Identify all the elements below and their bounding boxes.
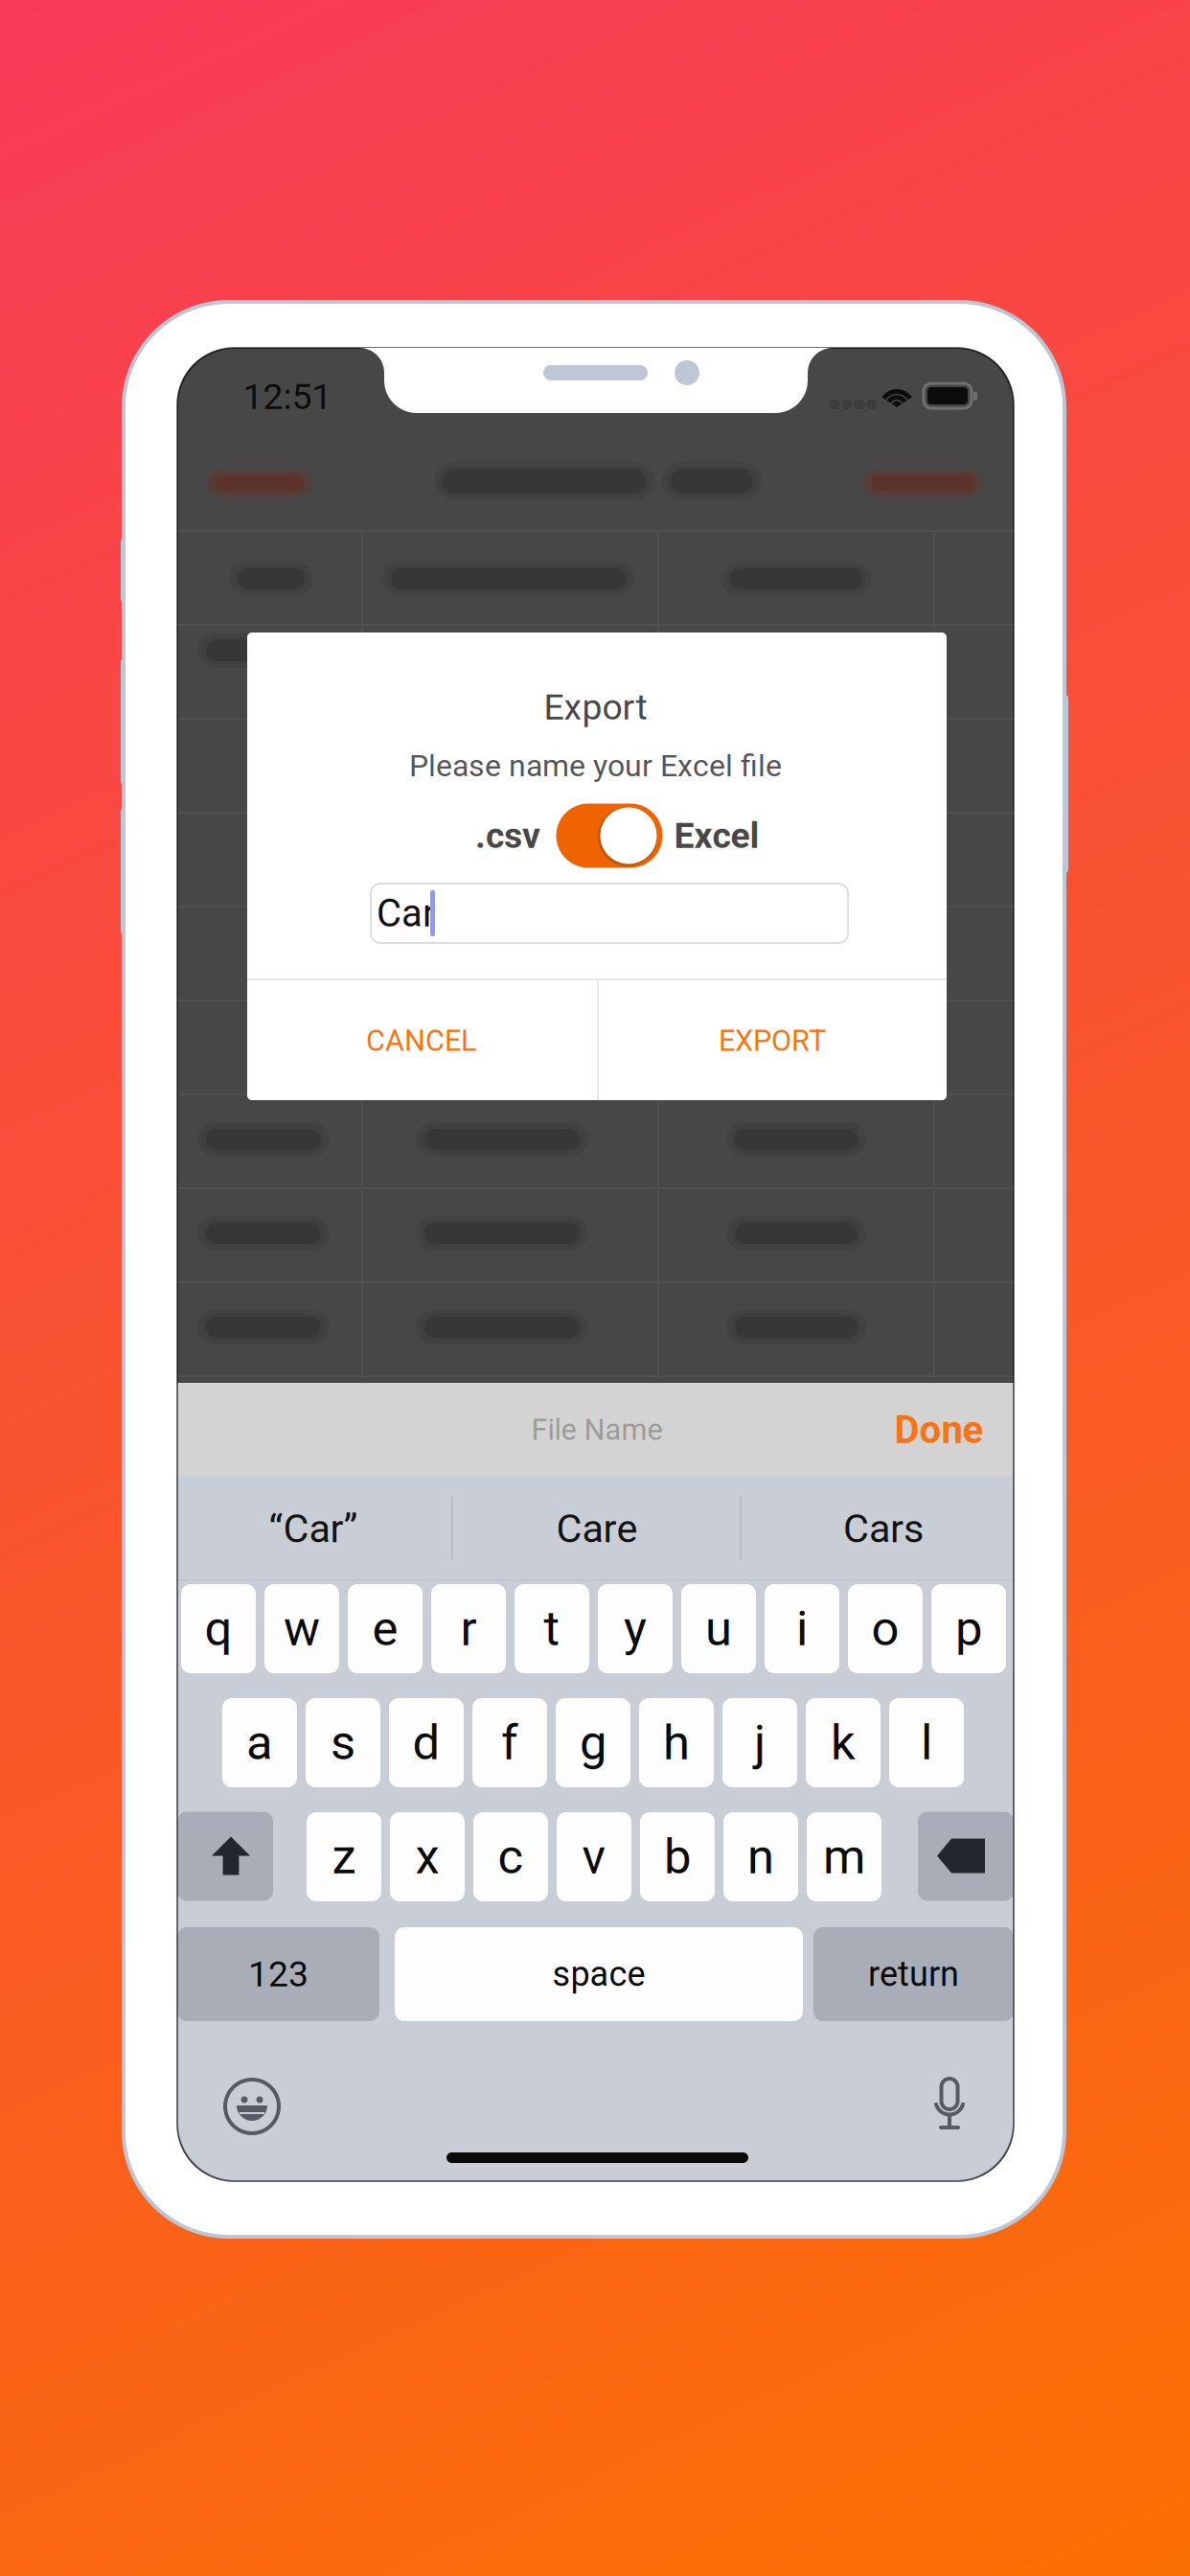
button[interactable]: i xyxy=(765,1584,839,1673)
staticText: w xyxy=(284,1600,320,1657)
button[interactable]: f xyxy=(472,1698,547,1787)
button[interactable]: a xyxy=(222,1698,297,1787)
staticText: a xyxy=(246,1714,273,1771)
button[interactable]: p xyxy=(931,1584,1006,1673)
button[interactable]: Shift xyxy=(177,1812,273,1901)
staticText: k xyxy=(831,1714,856,1771)
button[interactable]: t xyxy=(515,1584,589,1673)
staticText: x xyxy=(415,1828,439,1885)
staticText: Cars xyxy=(843,1505,924,1552)
button[interactable]: Delete xyxy=(918,1812,1014,1901)
staticText: q xyxy=(205,1600,232,1657)
button[interactable]: v xyxy=(557,1812,631,1901)
staticText: Done xyxy=(894,1407,984,1452)
staticText: EXPORT xyxy=(719,1023,826,1058)
staticText: CANCEL xyxy=(366,1023,477,1058)
staticText: f xyxy=(501,1714,518,1771)
button[interactable]: space xyxy=(395,1927,803,2021)
staticText: h xyxy=(663,1714,690,1771)
staticText: File Name xyxy=(531,1413,663,1447)
button[interactable]: q xyxy=(181,1584,256,1673)
button[interactable]: g xyxy=(556,1698,630,1787)
staticText: c xyxy=(498,1828,524,1885)
staticText: Car xyxy=(377,891,436,936)
button[interactable]: o xyxy=(848,1584,923,1673)
staticText: s xyxy=(331,1714,355,1771)
staticText: i xyxy=(796,1600,808,1657)
staticText: Export xyxy=(544,686,647,728)
button[interactable]: l xyxy=(889,1698,964,1787)
button[interactable]: b xyxy=(640,1812,715,1901)
staticText: Please name your Excel file xyxy=(409,748,782,784)
button[interactable]: return xyxy=(813,1927,1014,2021)
staticText: y xyxy=(624,1600,647,1657)
button[interactable]: EXPORT xyxy=(598,981,946,1101)
button[interactable]: y xyxy=(598,1584,673,1673)
staticText: n xyxy=(747,1828,774,1885)
staticText: 123 xyxy=(248,1953,309,1995)
staticText: b xyxy=(664,1828,691,1885)
button[interactable]: z xyxy=(307,1812,381,1901)
button[interactable]: j xyxy=(722,1698,797,1787)
staticText: v xyxy=(582,1828,606,1885)
staticText: t xyxy=(544,1600,560,1657)
button[interactable]: m xyxy=(807,1812,881,1901)
staticText: m xyxy=(823,1828,865,1885)
staticText: r xyxy=(460,1600,477,1657)
staticText: .csv xyxy=(475,815,540,857)
button[interactable]: n xyxy=(723,1812,798,1901)
button[interactable]: 123 xyxy=(177,1927,379,2021)
button[interactable]: e xyxy=(348,1584,423,1673)
button[interactable]: Done xyxy=(872,1387,1006,1473)
staticText: j xyxy=(754,1714,766,1771)
button[interactable]: CANCEL xyxy=(247,981,596,1101)
button[interactable]: x xyxy=(390,1812,465,1901)
button[interactable]: u xyxy=(681,1584,756,1673)
staticText: o xyxy=(871,1600,899,1657)
button[interactable]: k xyxy=(806,1698,881,1787)
staticText: z xyxy=(332,1828,356,1885)
button[interactable]: s xyxy=(306,1698,380,1787)
button[interactable]: r xyxy=(431,1584,506,1673)
button[interactable]: c xyxy=(473,1812,548,1901)
staticText: Care xyxy=(556,1505,638,1552)
button[interactable]: d xyxy=(389,1698,464,1787)
staticText: return xyxy=(868,1954,959,1994)
staticText: Excel xyxy=(674,815,759,857)
staticText: e xyxy=(372,1600,398,1657)
button[interactable]: w xyxy=(264,1584,339,1673)
staticText: 12:51 xyxy=(243,376,332,418)
staticText: “Car” xyxy=(269,1505,358,1552)
staticText: space xyxy=(552,1954,645,1994)
staticText: u xyxy=(705,1600,732,1657)
staticText: g xyxy=(580,1714,606,1771)
staticText: d xyxy=(412,1714,440,1771)
button[interactable]: h xyxy=(639,1698,714,1787)
staticText: p xyxy=(955,1600,982,1657)
staticText: l xyxy=(921,1714,932,1771)
